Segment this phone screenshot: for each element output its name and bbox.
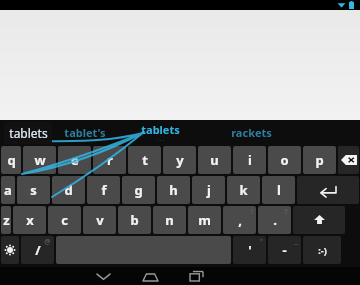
staticText: e	[71, 151, 79, 169]
button[interactable]: f	[87, 176, 120, 204]
button[interactable]: v	[83, 206, 116, 234]
button[interactable]: :-)	[303, 236, 341, 264]
button[interactable]: a	[1, 176, 15, 204]
staticText: f	[101, 181, 107, 199]
button[interactable]: d	[52, 176, 85, 204]
button[interactable]: s	[17, 176, 50, 204]
staticText: y	[176, 151, 184, 169]
staticText: i	[248, 151, 252, 169]
staticText: z	[3, 211, 10, 229]
staticText: l	[277, 181, 281, 199]
button[interactable]: '	[233, 236, 266, 264]
staticText: @	[44, 237, 51, 247]
button[interactable]: l	[262, 176, 295, 204]
button[interactable]: rackets	[196, 120, 306, 145]
button[interactable]: q	[1, 146, 21, 174]
button[interactable]: y	[163, 146, 196, 174]
staticText: "	[260, 237, 263, 247]
button[interactable]: Shift	[293, 206, 345, 234]
staticText: ,	[238, 211, 242, 229]
button[interactable]: Hide keyboard	[86, 267, 120, 285]
staticText: d	[64, 181, 73, 199]
button[interactable]: u	[198, 146, 231, 174]
button[interactable]: p	[303, 146, 336, 174]
button[interactable]: b	[118, 206, 151, 234]
button[interactable]: t	[128, 146, 161, 174]
button[interactable]: j	[192, 176, 225, 204]
staticText: b	[130, 211, 139, 229]
button[interactable]: .	[258, 206, 291, 234]
button[interactable]: w	[23, 146, 56, 174]
staticText: .	[273, 211, 277, 229]
button[interactable]: z	[1, 206, 11, 234]
button[interactable]: h	[157, 176, 190, 204]
staticText: p	[315, 151, 324, 169]
staticText: g	[134, 181, 143, 199]
staticText: m	[198, 211, 211, 229]
button[interactable]: x	[13, 206, 46, 234]
staticText: s	[30, 181, 37, 199]
staticText: !	[251, 207, 253, 217]
staticText: x	[26, 211, 34, 229]
button[interactable]: Home	[133, 267, 167, 285]
button[interactable]: r	[93, 146, 126, 174]
staticText: t	[142, 151, 148, 169]
button[interactable]: Recents	[179, 267, 213, 285]
staticText: :-)	[318, 244, 327, 256]
button[interactable]: Enter	[297, 176, 359, 204]
staticText: w	[34, 151, 46, 169]
staticText: v	[96, 211, 104, 229]
button[interactable]: c	[48, 206, 81, 234]
staticText: j	[207, 181, 211, 199]
staticText: r	[107, 151, 113, 169]
button[interactable]: tablets	[105, 120, 215, 145]
staticText: ?	[284, 207, 288, 217]
button[interactable]: tablets	[4, 122, 52, 144]
staticText: c	[61, 211, 68, 229]
staticText: tablets	[141, 122, 180, 137]
staticText: '	[248, 241, 252, 259]
button[interactable]: Settings	[1, 236, 19, 264]
staticText: _	[294, 237, 298, 247]
button[interactable]: k	[227, 176, 260, 204]
staticText: -	[282, 241, 287, 259]
button[interactable]: n	[153, 206, 186, 234]
button[interactable]: ,	[223, 206, 256, 234]
staticText: /	[35, 241, 41, 259]
staticText: u	[210, 151, 219, 169]
staticText: o	[280, 151, 289, 169]
staticText: k	[239, 181, 248, 199]
staticText: q	[7, 151, 16, 169]
button[interactable]: /	[21, 236, 54, 264]
staticText: tablet's	[64, 125, 106, 140]
button[interactable]: -	[268, 236, 301, 264]
button[interactable]: i	[233, 146, 266, 174]
staticText: a	[4, 181, 12, 199]
staticText: n	[165, 211, 174, 229]
button[interactable]: g	[122, 176, 155, 204]
button[interactable]: tablet's	[30, 120, 140, 145]
staticText: rackets	[231, 125, 272, 140]
button[interactable]: Backspace	[338, 146, 359, 174]
button[interactable]: m	[188, 206, 221, 234]
button[interactable]: e	[58, 146, 91, 174]
button[interactable]: o	[268, 146, 301, 174]
staticText: h	[169, 181, 178, 199]
staticText: · · ·	[157, 137, 164, 144]
staticText: tablets	[9, 125, 48, 141]
